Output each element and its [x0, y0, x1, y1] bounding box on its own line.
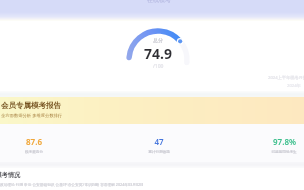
staticText: 47: [154, 136, 164, 147]
staticText: 87.6: [26, 136, 42, 147]
staticText: 在线模考: [147, 0, 171, 4]
staticText: 97.8%: [273, 136, 296, 147]
button[interactable]: 87.6: [0, 136, 74, 155]
staticText: 74.9: [144, 44, 172, 63]
button[interactable]: 97.8%: [244, 136, 304, 155]
staticText: 模考最高分: [25, 150, 43, 155]
staticText: 2024年: [287, 83, 301, 89]
staticText: 累计行测做题: [148, 150, 170, 155]
staticText: 已超越同场考生: [271, 150, 297, 155]
staticText: 2024上半年模考月报: [268, 75, 304, 81]
button[interactable]: 47: [119, 136, 199, 155]
staticText: 总分: [153, 37, 163, 43]
staticText: 全方面数据分析 多维度分数排行: [1, 112, 63, 118]
staticText: /100: [153, 63, 164, 70]
staticText: 政治理论 行测 申论 公安基础知识 公基(不含公安类) 常识判断 言语理解 20…: [0, 182, 144, 187]
staticText: 会员专属模考报告: [1, 101, 61, 110]
button[interactable]: 会员专属模考报告: [0, 97, 304, 124]
staticText: 本月模考情况: [0, 171, 21, 179]
